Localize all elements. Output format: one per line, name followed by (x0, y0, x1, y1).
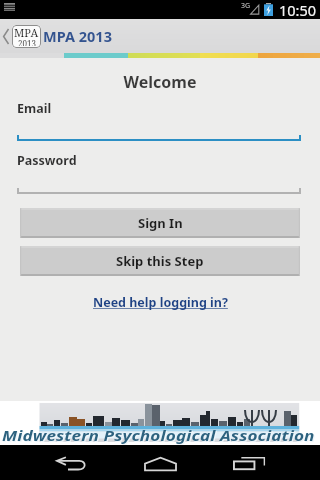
button[interactable]: Recent apps (217, 445, 281, 480)
button[interactable]: Home (128, 445, 192, 480)
staticText: MPA 2013 (43, 26, 112, 46)
staticText: Midwestern Psychological Association (3, 427, 320, 446)
staticText: Midwestern Psychological Association (2, 427, 320, 445)
button[interactable]: Midwestern Psychological Association ban… (0, 401, 320, 445)
staticText: Password (17, 152, 77, 169)
staticText: Email (17, 100, 52, 117)
staticText: 3G (241, 1, 251, 11)
staticText: MPA (14, 25, 39, 40)
button[interactable]: Back (40, 445, 102, 480)
button[interactable]: Sign In (20, 208, 300, 238)
staticText: 10:50 (279, 0, 317, 19)
staticText: Skip this Step (116, 252, 204, 270)
staticText: 2013 (18, 38, 36, 46)
staticText: Welcome (0, 71, 320, 93)
staticText: Sign In (138, 214, 183, 232)
button[interactable]: Navigate up (0, 19, 12, 53)
staticText: Need help logging in? (93, 294, 228, 311)
button[interactable]: Skip this Step (20, 246, 300, 276)
button[interactable]: Need help logging in? (91, 293, 230, 312)
